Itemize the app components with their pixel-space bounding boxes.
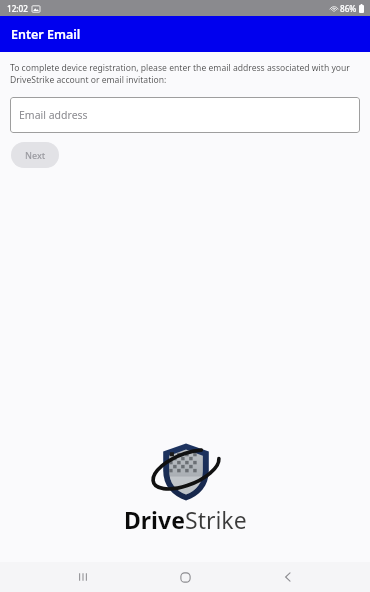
button[interactable]: Home <box>165 562 205 592</box>
staticText: Enter Email <box>11 26 81 43</box>
button[interactable]: Back <box>268 562 308 592</box>
staticText: 86% <box>340 3 357 14</box>
button[interactable]: Recent apps <box>63 562 103 592</box>
staticText: Strike <box>185 504 247 535</box>
button[interactable]: Next <box>11 142 59 168</box>
button[interactable]: Email address <box>10 97 360 133</box>
staticText: 12:02 <box>7 3 28 14</box>
staticText: Drive <box>124 504 185 535</box>
staticText: To complete device registration, please … <box>10 62 356 86</box>
staticText: Next <box>25 149 46 161</box>
staticText: Email address <box>19 108 88 122</box>
